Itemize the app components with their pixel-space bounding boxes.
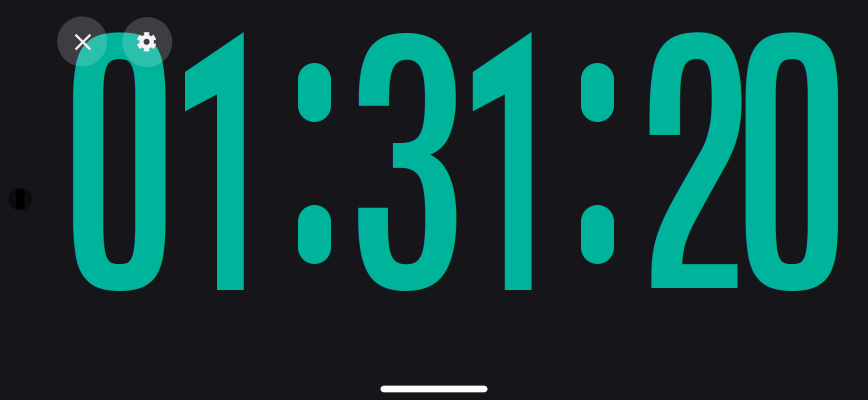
staticText: 3 [343,0,468,329]
staticText: 0 [728,0,855,329]
staticText: 0 [56,0,183,329]
button[interactable]: Settings [122,17,172,67]
button[interactable]: Close [57,16,107,66]
staticText: 2 [627,0,752,329]
